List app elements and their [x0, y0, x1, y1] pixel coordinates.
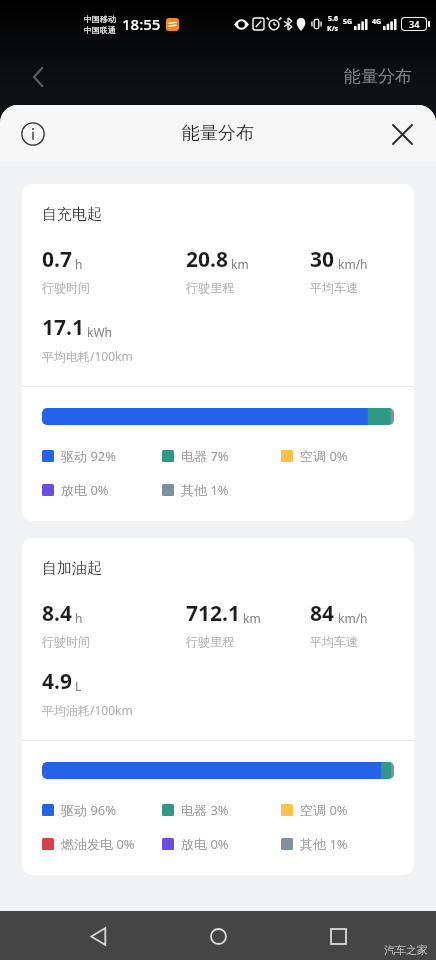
staticText: 自加油起	[42, 559, 102, 578]
staticText: h	[75, 256, 83, 272]
staticText: 放电 0%	[61, 481, 109, 499]
staticText: L	[75, 678, 82, 694]
staticText: 84	[310, 599, 335, 628]
button[interactable]: 自充电起	[22, 184, 414, 521]
staticText: 自充电起	[42, 205, 102, 224]
staticText: K/s	[327, 24, 339, 34]
staticText: 行驶时间	[42, 280, 90, 295]
staticText: 中国联通	[84, 25, 116, 35]
staticText: 电器 3%	[181, 801, 229, 819]
staticText: km/h	[338, 256, 368, 272]
staticText: km	[231, 256, 249, 272]
staticText: km	[243, 610, 261, 626]
staticText: 712.1	[186, 599, 240, 628]
staticText: 平均车速	[310, 634, 358, 649]
staticText: 空调 0%	[300, 447, 348, 465]
staticText: 34	[409, 18, 420, 30]
staticText: 5G	[343, 17, 353, 27]
button[interactable]: Back	[76, 914, 120, 958]
staticText: 平均车速	[310, 280, 358, 295]
staticText: 放电 0%	[181, 835, 229, 853]
staticText: 中国移动	[84, 14, 116, 24]
staticText: kWh	[87, 324, 112, 340]
staticText: 17.1	[42, 313, 84, 342]
staticText: km/h	[338, 610, 368, 626]
staticText: 空调 0%	[300, 801, 348, 819]
staticText: 驱动 96%	[61, 801, 117, 819]
staticText: 4.9	[42, 667, 72, 696]
staticText: 行驶里程	[186, 634, 234, 649]
staticText: 驱动 92%	[61, 447, 117, 465]
staticText: 能量分布	[344, 66, 412, 87]
staticText: 30	[310, 245, 335, 274]
button[interactable]: Info	[18, 119, 48, 149]
button[interactable]: Recents	[316, 914, 360, 958]
staticText: 其他 1%	[300, 835, 348, 853]
staticText: 4G	[372, 17, 382, 27]
button[interactable]: Home	[196, 914, 240, 958]
staticText: 汽车之家	[384, 943, 428, 957]
staticText: 行驶里程	[186, 280, 234, 295]
staticText: 其他 1%	[181, 481, 229, 499]
staticText: 电器 7%	[181, 447, 229, 465]
staticText: 平均油耗/100km	[42, 702, 133, 718]
button[interactable]: Close	[386, 118, 418, 150]
staticText: 5.6	[328, 14, 338, 24]
button[interactable]: 自加油起	[22, 538, 414, 875]
staticText: 燃油发电 0%	[61, 835, 135, 853]
staticText: 能量分布	[182, 122, 254, 145]
staticText: 平均电耗/100km	[42, 348, 133, 364]
staticText: h	[75, 610, 83, 626]
staticText: 0.7	[42, 245, 72, 274]
staticText: 行驶时间	[42, 634, 90, 649]
staticText: 20.8	[186, 245, 228, 274]
staticText: 18:55	[122, 14, 161, 34]
button[interactable]: Back	[22, 60, 56, 94]
staticText: 8.4	[42, 599, 72, 628]
